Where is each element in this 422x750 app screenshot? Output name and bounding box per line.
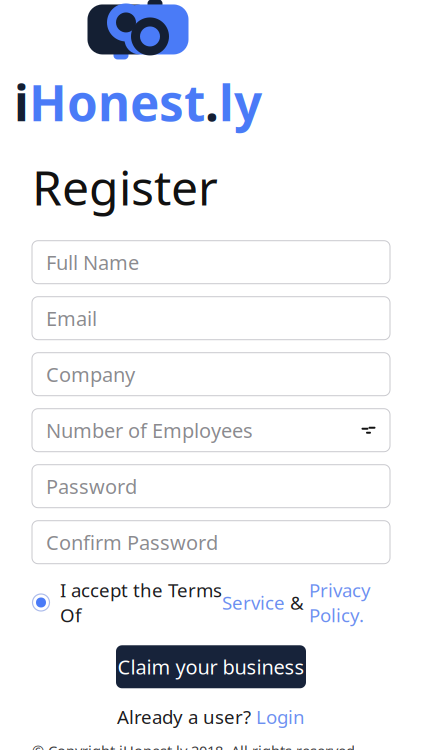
staticText: &: [285, 590, 309, 615]
staticText: Register: [32, 155, 218, 219]
staticText: Email: [46, 305, 97, 331]
button[interactable]: Number of Employees: [32, 409, 390, 452]
staticText: Company: [46, 361, 135, 387]
staticText: Privacy Policy.: [309, 578, 371, 627]
staticText: Claim your business: [117, 653, 304, 680]
staticText: .: [205, 69, 219, 135]
staticText: I accept the Terms Of: [60, 578, 222, 627]
button[interactable]: Full Name: [32, 241, 390, 284]
staticText: Confirm Password: [46, 529, 218, 555]
button[interactable]: Confirm Password: [32, 521, 390, 564]
staticText: Honest: [29, 69, 205, 135]
staticText: Already a user?: [117, 704, 256, 729]
staticText: ly: [219, 69, 262, 135]
staticText: Full Name: [46, 249, 139, 275]
staticText: © Copyright iHonest.ly 2018. All rights …: [32, 741, 355, 750]
button[interactable]: Password: [32, 465, 390, 508]
button[interactable]: Company: [32, 353, 390, 396]
button[interactable]: Claim your business: [116, 645, 306, 688]
button[interactable]: Already a user?: [107, 700, 315, 733]
button[interactable]: Email: [32, 297, 390, 340]
staticText: Service: [222, 590, 285, 615]
staticText: Password: [46, 473, 137, 499]
button[interactable]: I accept the Terms Of: [0, 578, 422, 627]
staticText: Number of Employees: [46, 417, 253, 443]
staticText: i: [14, 69, 29, 135]
staticText: Login: [256, 704, 305, 729]
